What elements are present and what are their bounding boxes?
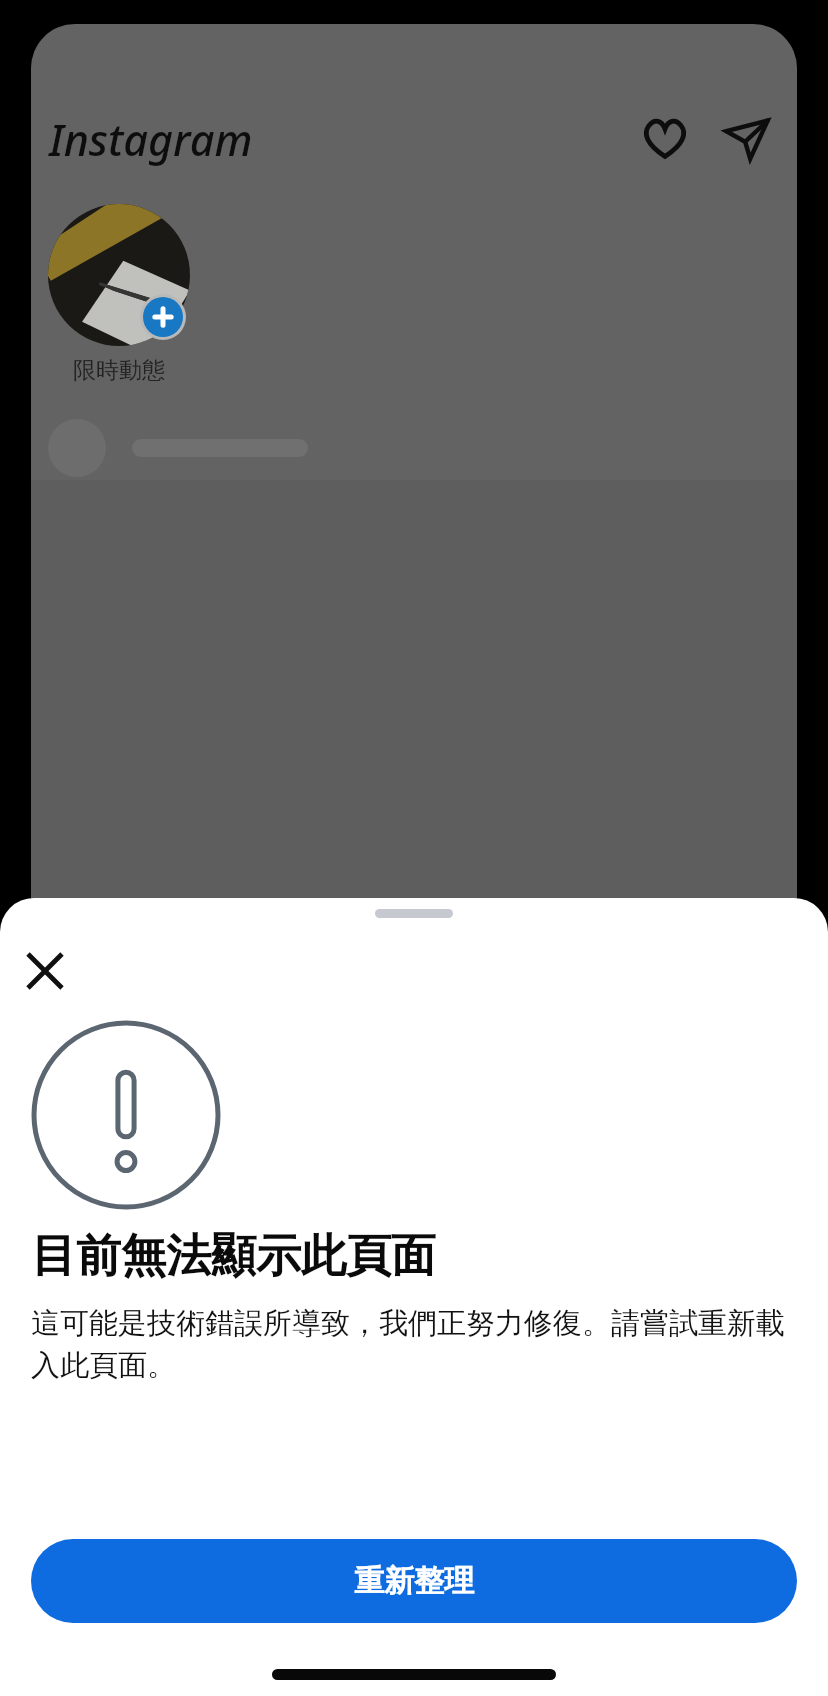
button[interactable]: Direct messages xyxy=(715,107,779,171)
button[interactable]: Likes xyxy=(633,107,697,171)
button[interactable]: 限時動態 xyxy=(48,204,190,385)
staticText: 限時動態 xyxy=(73,356,165,385)
staticText: 這可能是技術錯誤所導致，我們正努力修復。請嘗試重新載入此頁面。 xyxy=(31,1305,797,1384)
button[interactable]: Close xyxy=(14,940,76,1002)
staticText: 目前無法顯示此頁面 xyxy=(31,1228,436,1285)
staticText: Instagram xyxy=(49,110,253,169)
button[interactable]: 重新整理 xyxy=(31,1539,797,1623)
staticText: 重新整理 xyxy=(354,1562,474,1600)
